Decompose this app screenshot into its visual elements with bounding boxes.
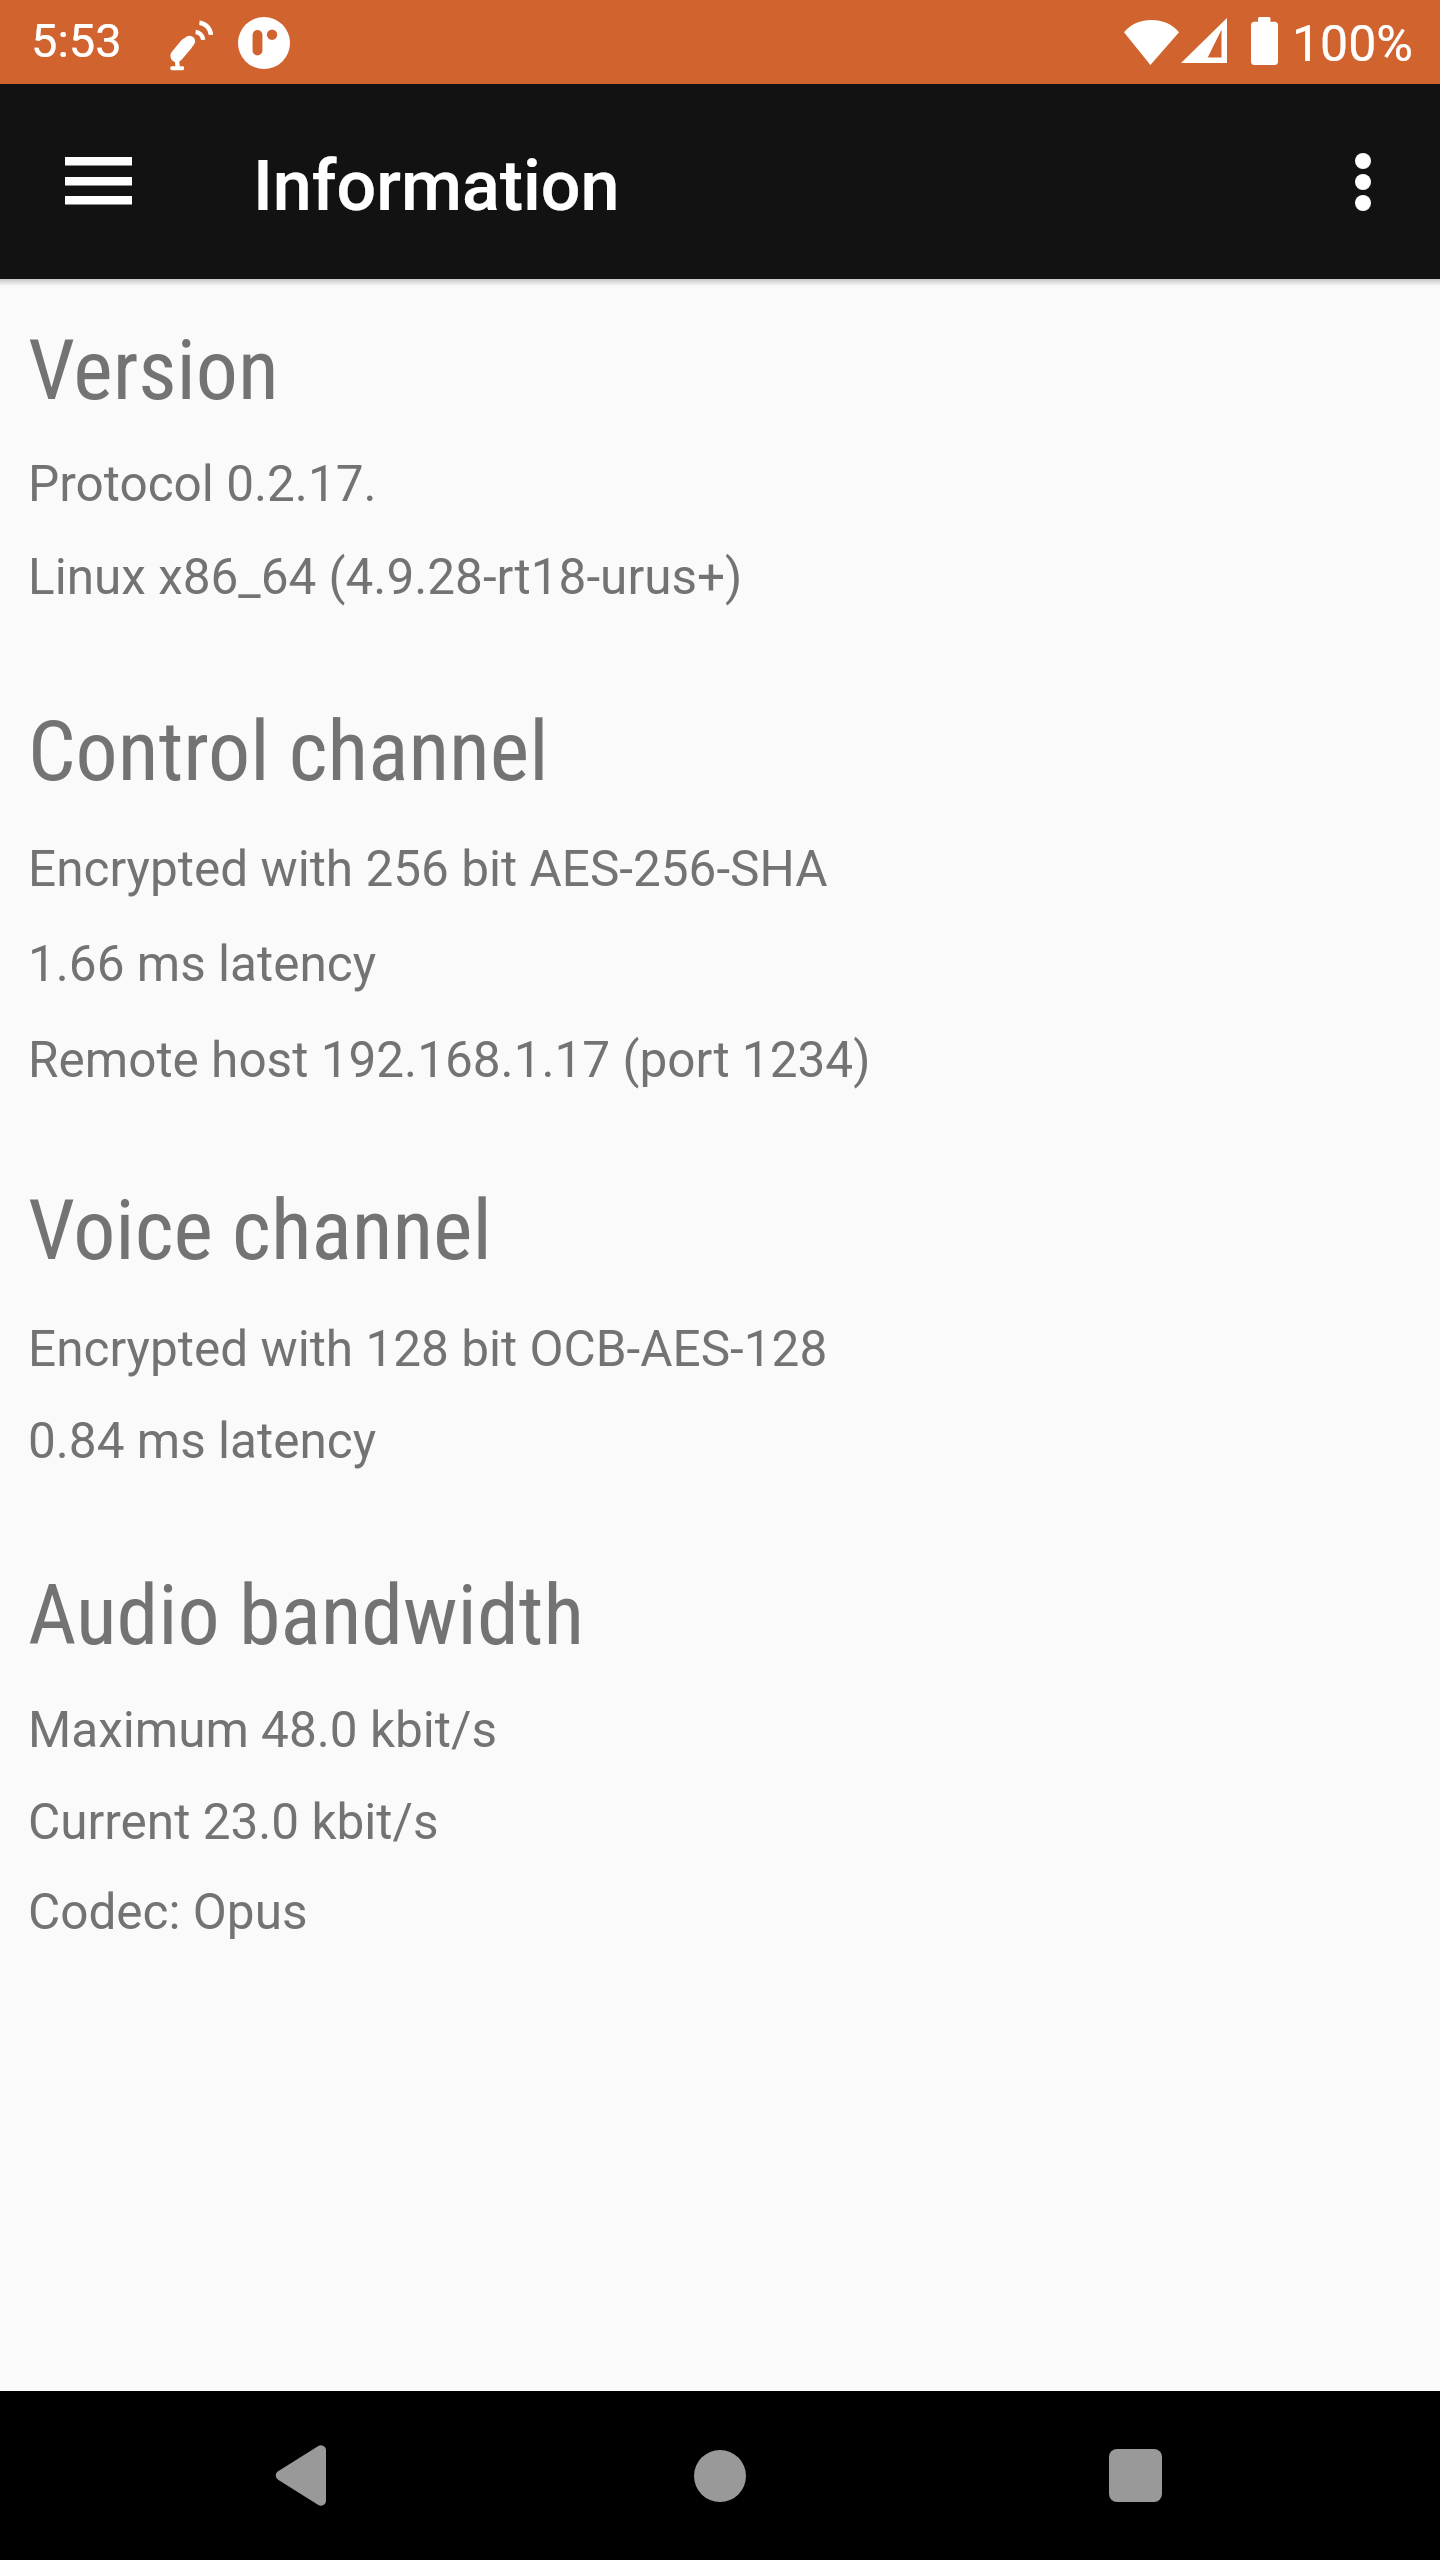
- staticText: Linux x86_64 (4.9.28-rt18-urus+): [28, 548, 743, 606]
- button[interactable]: Open navigation drawer: [2, 100, 194, 260]
- button[interactable]: Back: [211, 2391, 391, 2560]
- staticText: Protocol 0.2.17.: [28, 455, 377, 513]
- staticText: 1.66 ms latency: [28, 935, 377, 993]
- staticText: Codec: Opus: [28, 1883, 308, 1941]
- staticText: Remote host 192.168.1.17 (port 1234): [28, 1031, 871, 1089]
- staticText: Control channel: [28, 702, 549, 800]
- staticText: 100%: [1292, 15, 1413, 74]
- button[interactable]: More options: [1284, 102, 1440, 262]
- staticText: Voice channel: [28, 1181, 492, 1279]
- staticText: Audio bandwidth: [28, 1566, 584, 1664]
- staticText: 0.84 ms latency: [28, 1412, 377, 1470]
- staticText: Current 23.0 kbit/s: [28, 1793, 439, 1851]
- staticText: Version: [28, 321, 279, 419]
- staticText: 5:53: [31, 13, 122, 68]
- staticText: Information: [253, 145, 620, 227]
- button[interactable]: Home: [630, 2391, 810, 2560]
- staticText: Encrypted with 128 bit OCB-AES-128: [28, 1320, 828, 1378]
- button[interactable]: Recent apps: [1045, 2391, 1225, 2560]
- staticText: Encrypted with 256 bit AES-256-SHA: [28, 840, 828, 898]
- staticText: Maximum 48.0 kbit/s: [28, 1701, 497, 1759]
